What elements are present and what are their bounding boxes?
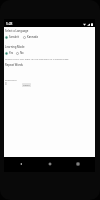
button[interactable]: Kannada (23, 35, 38, 39)
staticText: Repeat Words (5, 63, 23, 67)
button[interactable]: Yes (5, 51, 14, 55)
staticText: Sanskrit (9, 35, 20, 39)
staticText: Select a Language (5, 29, 29, 33)
button[interactable]: Sanskrit (5, 35, 20, 39)
button[interactable]: SUBMIT (22, 83, 31, 87)
staticText: No (20, 51, 24, 55)
staticText: 5:28 (6, 22, 13, 26)
staticText: SUBMIT (23, 84, 30, 86)
staticText: Select this if you want all the vibratio… (5, 57, 69, 60)
button[interactable]: Home (38, 157, 62, 170)
staticText: Kannada (27, 35, 38, 39)
button[interactable]: No (16, 51, 24, 55)
staticText: Repeat words (5, 79, 17, 81)
staticText: Yes (9, 51, 14, 55)
button[interactable]: Recent apps (66, 157, 90, 170)
button[interactable]: Back (9, 157, 33, 170)
staticText: 3 (5, 82, 7, 86)
staticText: Learning Mode (5, 45, 25, 49)
